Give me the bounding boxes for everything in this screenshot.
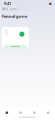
button[interactable]: Tab 4 — [41, 109, 55, 117]
button[interactable]: Tab 2 — [14, 109, 28, 117]
staticText: Added to list — [11, 46, 20, 47]
staticText: 9:41 — [4, 1, 11, 6]
staticText: ▮▮ — [49, 2, 51, 5]
button[interactable]: Tab 3 — [27, 109, 41, 117]
button[interactable]: Tab 1 — [0, 109, 14, 117]
staticText: Wed, June 1 — [2, 7, 20, 11]
staticText: Fennel gone — [2, 14, 27, 19]
